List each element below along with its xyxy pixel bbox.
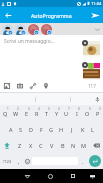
button[interactable]: H [57,121,66,137]
staticText: Z [18,142,22,149]
button[interactable]: Expand recipients [91,23,103,35]
button[interactable]: . [78,153,87,169]
button[interactable]: C [36,137,45,153]
staticText: 11:04 [91,1,102,6]
button[interactable]: Attach file [26,80,39,92]
staticText: ?123 [3,159,12,164]
button[interactable]: N [69,137,78,153]
staticText: 3 [28,107,30,111]
staticText: U [64,110,69,117]
button[interactable]: K [78,121,87,137]
staticText: B [61,142,65,149]
button[interactable]: U [62,105,71,121]
staticText: 117 [88,83,96,89]
staticText: L [91,126,94,133]
staticText: . [82,158,84,165]
button[interactable]: Send [87,7,103,23]
staticText: H [59,126,64,133]
staticText: X [29,142,33,149]
staticText: 2 [17,107,19,111]
staticText: E [25,110,29,117]
staticText: R [35,110,39,117]
staticText: K [81,126,85,133]
button[interactable]: Contact [40,23,52,35]
button[interactable]: , [15,153,23,169]
button[interactable]: G [47,121,56,137]
staticText: N [71,142,76,149]
button[interactable]: Enter [87,153,103,169]
staticText: 1 [7,107,9,111]
button[interactable]: X [26,137,35,153]
button[interactable]: Recent apps [68,171,78,181]
staticText: F [40,126,43,133]
button[interactable]: Q [1,105,10,121]
button[interactable]: L [88,121,97,137]
staticText: , [18,158,20,165]
button[interactable]: M [79,137,88,153]
button[interactable]: Contact [14,23,26,35]
staticText: Scrivi un messaggio... [4,38,55,45]
button[interactable]: F [37,121,46,137]
staticText: D [29,126,34,133]
button[interactable]: Emoji [23,153,32,169]
staticText: T [45,110,49,117]
button[interactable]: Contact [1,23,13,35]
button[interactable]: V [47,137,56,153]
button[interactable]: Remove attachment [82,40,88,46]
button[interactable]: O [83,105,92,121]
button[interactable]: Z [15,137,24,153]
button[interactable]: I [72,105,81,121]
button[interactable]: J [67,121,76,137]
staticText: G [49,126,54,133]
button[interactable]: Gallery [0,80,13,92]
staticText: I [76,110,78,117]
staticText: Y [55,110,59,117]
button[interactable]: Hide keyboard [87,171,97,181]
button[interactable]: ?123 [0,153,15,169]
staticText: O [85,110,90,117]
staticText: 7 [68,107,70,111]
button[interactable]: B [58,137,67,153]
staticText: J [71,126,73,133]
button[interactable]: Backspace [90,137,103,153]
staticText: P [96,110,100,117]
staticText: 4 [38,107,40,111]
staticText: C [39,142,43,149]
button[interactable]: A [6,121,15,137]
staticText: 8 [78,107,80,111]
staticText: V [50,142,54,149]
button[interactable]: Location [39,80,52,92]
button[interactable]: D [27,121,36,137]
button[interactable]: Contact [27,23,39,35]
button[interactable]: Y [52,105,61,121]
button[interactable]: W [11,105,20,121]
staticText: S [19,126,23,133]
staticText: AutoProgramma [31,12,72,19]
button[interactable]: T [42,105,51,121]
button[interactable]: Camera [13,80,26,92]
button[interactable]: E [22,105,31,121]
staticText: M [81,142,86,149]
staticText: A [9,126,13,133]
button[interactable]: Voice input [91,93,103,105]
button[interactable]: Shift [0,137,13,153]
button[interactable]: R [32,105,41,121]
staticText: Q [3,110,8,117]
button[interactable]: Home [45,171,55,181]
button[interactable]: Back [22,171,32,181]
staticText: 9 [89,107,91,111]
staticText: 5 [48,107,50,111]
staticText: W [13,110,19,117]
button[interactable]: S [16,121,25,137]
button[interactable]: P [93,105,102,121]
button[interactable]: Back [0,7,16,23]
staticText: 0 [99,107,101,111]
button[interactable]: Remove attachment [82,62,88,68]
staticText: 6 [58,107,60,111]
